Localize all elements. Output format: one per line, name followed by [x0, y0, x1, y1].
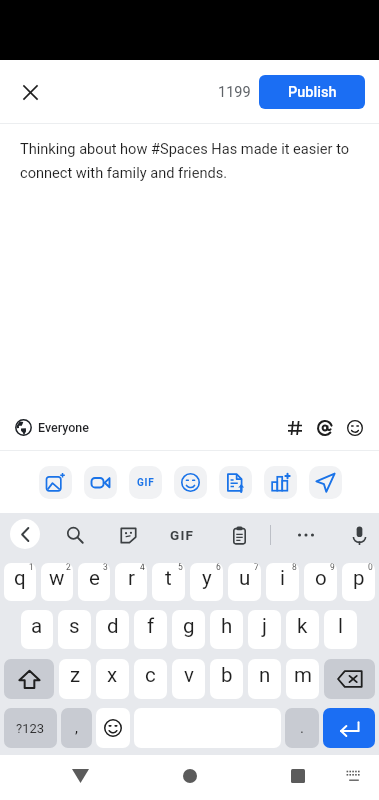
- button[interactable]: Add emoji: [174, 466, 207, 499]
- button[interactable]: Symbols: [4, 708, 57, 748]
- button[interactable]: i: [266, 563, 299, 601]
- button[interactable]: Everyone: [11, 415, 94, 440]
- staticText: 9: [330, 563, 335, 572]
- staticText: ?123: [16, 721, 45, 736]
- staticText: h: [221, 614, 233, 638]
- staticText: j: [262, 614, 267, 638]
- staticText: 5: [178, 563, 183, 572]
- staticText: d: [107, 614, 119, 638]
- staticText: g: [183, 614, 195, 638]
- button[interactable]: g: [172, 610, 205, 649]
- button[interactable]: Switch keyboard: [336, 758, 372, 794]
- staticText: o: [315, 566, 327, 590]
- button[interactable]: Close: [10, 72, 50, 112]
- staticText: 1: [29, 563, 34, 572]
- button[interactable]: d: [96, 610, 129, 649]
- staticText: n: [259, 663, 271, 687]
- button[interactable]: c: [134, 659, 167, 699]
- button[interactable]: k: [286, 610, 319, 649]
- button[interactable]: l: [324, 610, 357, 649]
- button[interactable]: Add poll: [264, 466, 297, 499]
- button[interactable]: o: [304, 563, 337, 601]
- button[interactable]: Stickers: [113, 520, 143, 550]
- staticText: s: [69, 614, 80, 638]
- button[interactable]: Add GIF: [129, 466, 162, 499]
- button[interactable]: Add document: [219, 466, 252, 499]
- button[interactable]: Shift: [4, 659, 54, 699]
- button[interactable]: f: [134, 610, 167, 649]
- button[interactable]: a: [21, 610, 53, 649]
- staticText: a: [31, 614, 43, 638]
- button[interactable]: Back: [10, 519, 40, 549]
- button[interactable]: Back: [62, 758, 98, 794]
- staticText: 1199: [218, 84, 251, 101]
- staticText: y: [202, 566, 212, 590]
- staticText: 8: [292, 563, 297, 572]
- button[interactable]: m: [286, 659, 319, 699]
- staticText: i: [280, 566, 285, 590]
- button[interactable]: Emoji: [341, 414, 368, 441]
- staticText: 2: [66, 563, 71, 572]
- button[interactable]: Mention: [311, 414, 338, 441]
- staticText: r: [128, 566, 135, 590]
- staticText: v: [184, 663, 194, 687]
- staticText: .: [300, 719, 304, 737]
- staticText: f: [147, 614, 155, 638]
- staticText: 6: [216, 563, 221, 572]
- staticText: w: [49, 566, 65, 590]
- button[interactable]: r: [115, 563, 147, 601]
- button[interactable]: q: [4, 563, 36, 601]
- button[interactable]: Add photo: [39, 466, 72, 499]
- button[interactable]: h: [210, 610, 243, 649]
- button[interactable]: Hashtag: [281, 414, 308, 441]
- staticText: GIF: [137, 477, 155, 489]
- staticText: ,: [75, 719, 78, 737]
- button[interactable]: Voice input: [344, 520, 374, 550]
- button[interactable]: Period: [285, 708, 319, 748]
- staticText: 3: [103, 563, 108, 572]
- button[interactable]: y: [190, 563, 223, 601]
- staticText: GIF: [170, 527, 195, 543]
- staticText: 4: [140, 563, 145, 572]
- button[interactable]: Search: [60, 520, 90, 550]
- button[interactable]: z: [59, 659, 91, 699]
- button[interactable]: Enter: [323, 708, 375, 748]
- staticText: 0: [368, 563, 373, 572]
- button[interactable]: Clipboard: [224, 520, 254, 550]
- staticText: Thinking about how #Spaces Has made it e…: [20, 140, 350, 157]
- staticText: u: [239, 566, 251, 590]
- button[interactable]: e: [78, 563, 110, 601]
- staticText: c: [145, 663, 156, 687]
- button[interactable]: Send: [309, 466, 342, 499]
- button[interactable]: s: [58, 610, 91, 649]
- button[interactable]: Backspace: [324, 659, 375, 699]
- staticText: k: [297, 614, 308, 638]
- button[interactable]: More options: [291, 520, 321, 550]
- button[interactable]: v: [172, 659, 205, 699]
- button[interactable]: b: [210, 659, 243, 699]
- staticText: z: [70, 663, 81, 687]
- button[interactable]: Publish: [259, 75, 365, 109]
- button[interactable]: t: [152, 563, 185, 601]
- button[interactable]: n: [248, 659, 281, 699]
- staticText: x: [107, 663, 118, 687]
- staticText: q: [14, 566, 26, 590]
- staticText: e: [89, 566, 100, 590]
- button[interactable]: Recents: [280, 758, 316, 794]
- button[interactable]: x: [96, 659, 129, 699]
- button[interactable]: Add video: [84, 466, 117, 499]
- button[interactable]: p: [342, 563, 375, 601]
- staticText: Everyone: [38, 420, 90, 435]
- button[interactable]: u: [228, 563, 261, 601]
- button[interactable]: w: [41, 563, 73, 601]
- button[interactable]: Emoji: [96, 708, 130, 748]
- staticText: m: [294, 663, 312, 687]
- staticText: Publish: [288, 84, 337, 101]
- button[interactable]: Comma: [61, 708, 92, 748]
- button[interactable]: GIF: [169, 521, 195, 549]
- staticText: b: [221, 663, 233, 687]
- staticText: 7: [254, 563, 259, 572]
- button[interactable]: j: [248, 610, 281, 649]
- button[interactable]: Home: [172, 758, 208, 794]
